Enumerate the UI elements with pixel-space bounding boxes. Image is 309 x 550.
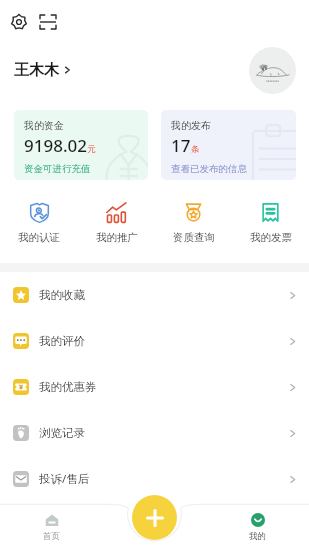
staticText: 元	[87, 144, 96, 155]
button[interactable]: 我的优惠券	[0, 364, 309, 410]
button[interactable]: 我的发布	[161, 110, 296, 180]
button[interactable]: Avatar	[249, 47, 296, 94]
button[interactable]: 我的评价	[0, 318, 309, 364]
button[interactable]: 浏览记录	[0, 410, 309, 456]
button[interactable]: 我的发票	[232, 202, 309, 244]
staticText: 我的资金	[24, 119, 64, 132]
button[interactable]: 我的推广	[78, 202, 155, 244]
staticText: 资金可进行充值	[24, 163, 91, 175]
staticText: 浏览记录	[39, 426, 85, 440]
button[interactable]: 首页	[0, 505, 103, 550]
button[interactable]: 我的资金	[14, 110, 148, 180]
staticText: 我的	[249, 531, 266, 542]
staticText: 我的评价	[39, 334, 85, 348]
button[interactable]: 王木木	[14, 46, 71, 94]
staticText: 我的推广	[96, 231, 138, 244]
button[interactable]: Settings	[7, 10, 31, 34]
staticText: 王木木	[14, 61, 59, 80]
button[interactable]: 投诉/售后	[0, 456, 309, 502]
staticText: 17	[171, 134, 191, 157]
button[interactable]: 资质查询	[155, 202, 232, 244]
button[interactable]: Add	[132, 495, 177, 540]
button[interactable]: 我的认证	[0, 202, 78, 244]
staticText: 9198.02	[24, 134, 87, 157]
staticText: 我的发布	[171, 119, 211, 132]
staticText: 我的认证	[18, 231, 60, 244]
staticText: 我的优惠券	[39, 380, 97, 394]
button[interactable]: 我的收藏	[0, 272, 309, 318]
staticText: 首页	[43, 531, 60, 542]
staticText: 查看已发布的信息	[171, 163, 247, 175]
staticText: 资质查询	[173, 231, 215, 244]
staticText: 我的收藏	[39, 288, 85, 302]
staticText: 条	[191, 144, 200, 155]
button[interactable]: 我的	[206, 505, 309, 550]
staticText: 我的发票	[250, 231, 292, 244]
staticText: 投诉/售后	[39, 471, 90, 487]
button[interactable]: Scan	[36, 10, 60, 34]
